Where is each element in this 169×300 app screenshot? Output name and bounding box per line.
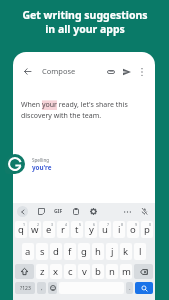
staticText: . (129, 284, 131, 292)
staticText: g (81, 245, 87, 258)
button[interactable]: n (106, 264, 118, 279)
button[interactable]: c (64, 264, 76, 279)
button[interactable]: b (92, 264, 104, 279)
staticText: o (130, 223, 136, 236)
button[interactable]: Settings (88, 206, 99, 217)
staticText: z (40, 265, 45, 278)
button[interactable]: a (22, 243, 34, 260)
staticText: l (139, 245, 142, 258)
staticText: 9 (135, 222, 138, 227)
button[interactable]: Voice input (139, 206, 150, 217)
button[interactable]: Stickers (36, 206, 47, 217)
button[interactable]: k (120, 243, 132, 260)
staticText: 7 (107, 222, 110, 227)
button[interactable]: z (36, 264, 48, 279)
staticText: j (111, 245, 114, 258)
button[interactable]: s (36, 243, 48, 260)
button[interactable]: Expand toolbar (17, 206, 28, 217)
staticText: When your ready, let's share this discov… (21, 100, 147, 120)
button[interactable]: m (120, 264, 132, 279)
button[interactable]: w (29, 221, 41, 238)
staticText: m (122, 265, 131, 278)
button[interactable]: r (57, 221, 69, 238)
staticText: e (46, 223, 52, 236)
staticText: c (68, 265, 73, 278)
button[interactable]: , (37, 282, 46, 294)
staticText: w (31, 223, 39, 236)
button[interactable]: ?123 (15, 282, 35, 294)
staticText: s (40, 245, 45, 258)
staticText: u (102, 223, 108, 236)
button[interactable]: Spelling (14, 155, 60, 176)
staticText: 5 (79, 222, 82, 227)
staticText: you're (32, 163, 52, 172)
staticText: Compose (42, 66, 76, 76)
button[interactable]: v (78, 264, 90, 279)
button[interactable]: d (50, 243, 62, 260)
staticText: n (109, 265, 115, 278)
staticText: Spelling (32, 157, 50, 163)
staticText: 1 (23, 222, 26, 227)
button[interactable]: . (126, 282, 133, 294)
button[interactable]: h (92, 243, 104, 260)
staticText: y (89, 223, 94, 236)
staticText: p (144, 223, 150, 236)
staticText: 2 (37, 222, 40, 227)
staticText: 0 (149, 222, 152, 227)
button[interactable]: g (78, 243, 90, 260)
staticText: k (123, 245, 129, 258)
button[interactable]: x (50, 264, 62, 279)
button[interactable]: Backspace (134, 264, 153, 279)
staticText: t (75, 223, 79, 236)
staticText: ?123 (20, 285, 31, 292)
staticText: 6 (93, 222, 96, 227)
staticText: f (68, 245, 72, 258)
button[interactable]: t (71, 221, 83, 238)
button[interactable]: e (43, 221, 55, 238)
button[interactable]: f (64, 243, 76, 260)
staticText: d (53, 245, 59, 258)
staticText: 8 (121, 222, 124, 227)
button[interactable]: o (127, 221, 139, 238)
staticText: v (82, 265, 87, 278)
button[interactable]: More keyboard options (122, 206, 133, 217)
staticText: , (41, 284, 43, 292)
staticText: x (53, 265, 59, 278)
staticText: 4 (65, 222, 68, 227)
staticText: q (18, 223, 24, 236)
staticText: r (61, 223, 65, 236)
button[interactable]: More options (135, 65, 148, 78)
staticText: 3 (51, 222, 54, 227)
button[interactable]: Grammarly (5, 154, 25, 174)
staticText: GIF (54, 208, 63, 215)
button[interactable]: Emoji (48, 282, 57, 294)
button[interactable]: Search (135, 282, 153, 294)
staticText: in all your apps (45, 22, 125, 36)
button[interactable]: p (141, 221, 153, 238)
button[interactable]: l (134, 243, 146, 260)
button[interactable]: u (99, 221, 111, 238)
staticText: i (118, 223, 121, 236)
staticText: Get writing suggestions (22, 8, 148, 22)
button[interactable]: Send (119, 64, 134, 79)
button[interactable]: j (106, 243, 118, 260)
button[interactable]: Attach file (103, 64, 118, 79)
button[interactable]: y (85, 221, 97, 238)
staticText: b (95, 265, 101, 278)
button[interactable]: i (113, 221, 125, 238)
button[interactable]: Back (20, 64, 34, 78)
button[interactable]: Clipboard (70, 206, 81, 217)
button[interactable]: q (15, 221, 27, 238)
staticText: a (25, 245, 31, 258)
button[interactable]: Shift (15, 264, 34, 279)
staticText: h (95, 245, 101, 258)
